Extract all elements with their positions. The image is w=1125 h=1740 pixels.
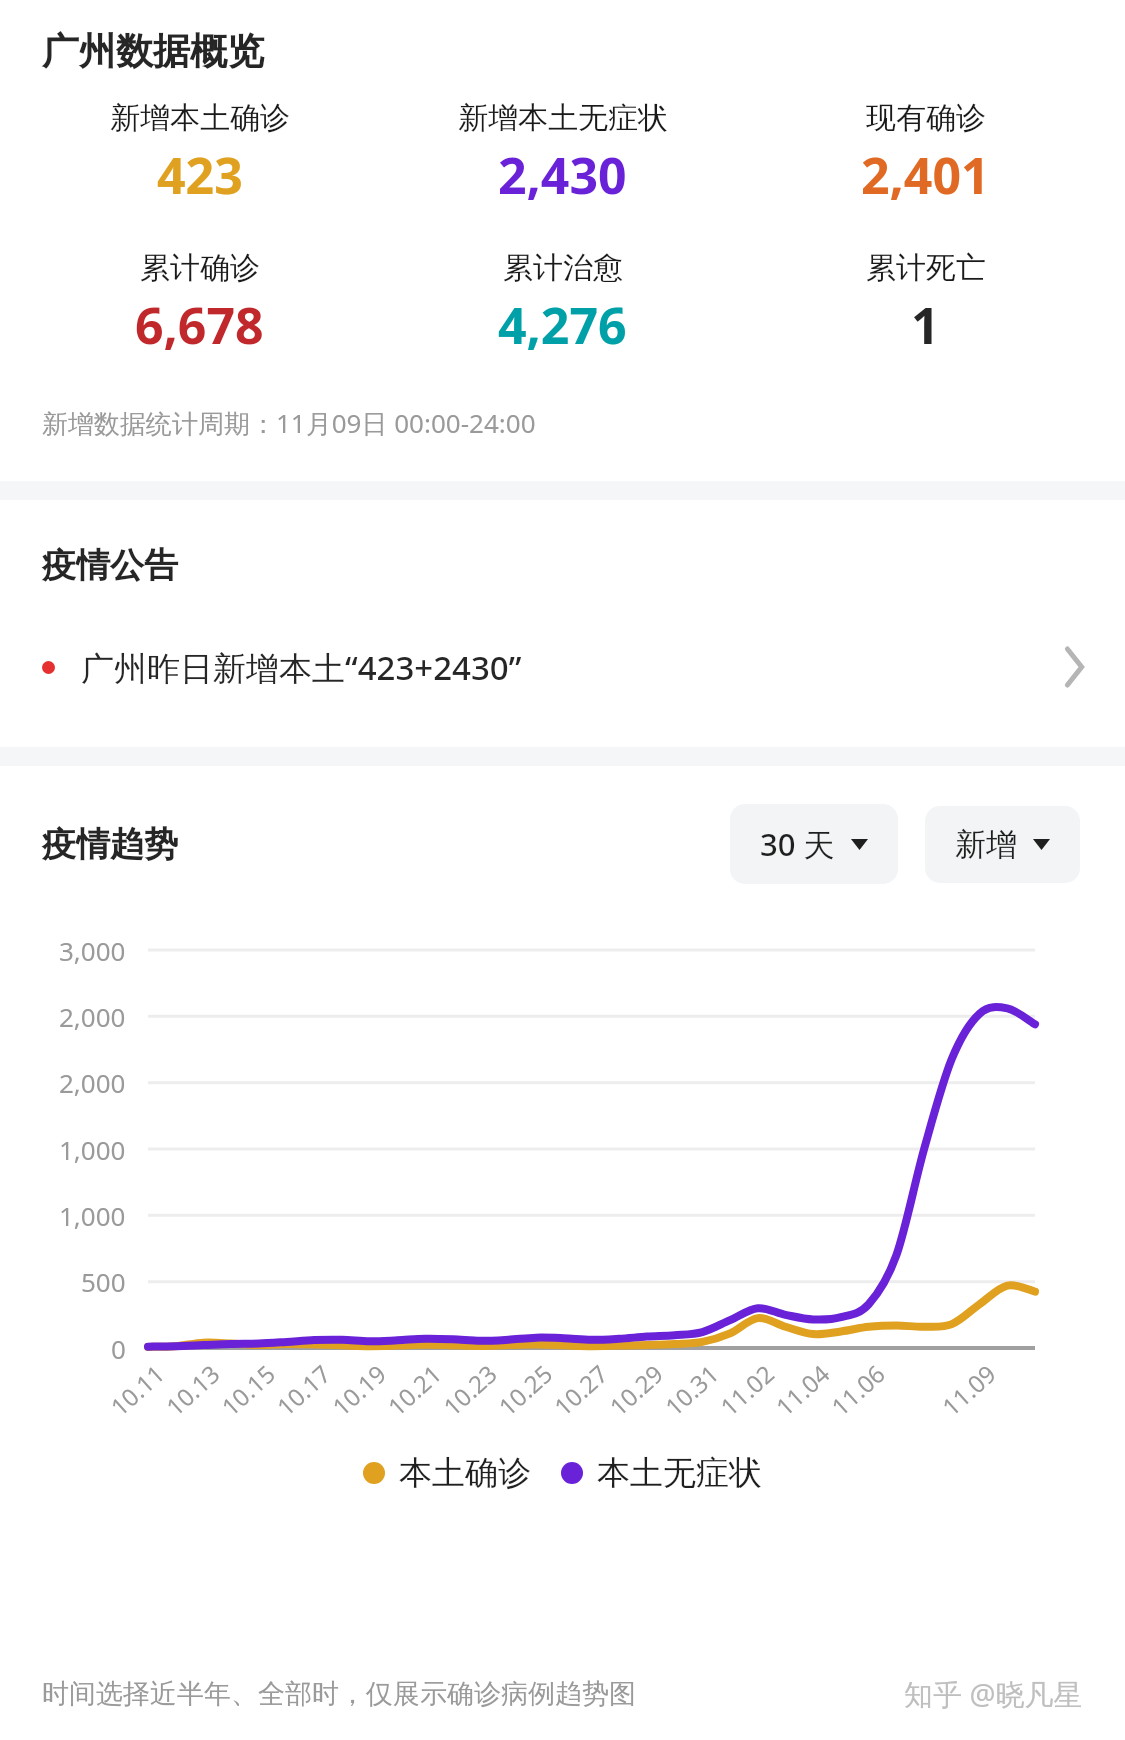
staticText: 本土无症状 <box>597 1452 762 1494</box>
staticText: 疫情公告 <box>42 544 178 587</box>
staticText: 2,401 <box>861 141 990 209</box>
staticText: 6,678 <box>135 291 264 359</box>
staticText: 4,276 <box>498 291 627 359</box>
staticText: 时间选择近半年、全部时，仅展示确诊病例趋势图 <box>42 1677 636 1711</box>
button[interactable]: 30 天 <box>730 804 898 884</box>
staticText: 累计治愈 <box>503 249 623 287</box>
staticText: 本土确诊 <box>399 1452 531 1494</box>
other: 查看详情 <box>1063 649 1085 685</box>
button[interactable]: 广州昨日新增本土“423+2430” <box>0 621 1125 713</box>
staticText: 广州数据概览 <box>42 28 264 75</box>
staticText: 累计确诊 <box>140 249 260 287</box>
staticText: 广州昨日新增本土“423+2430” <box>81 645 522 690</box>
staticText: 累计死亡 <box>866 249 986 287</box>
staticText: 30 天 <box>760 823 835 865</box>
staticText: 1 <box>911 291 940 359</box>
button[interactable]: 本土确诊 <box>363 1452 531 1494</box>
staticText: 知乎 @晓凡星 <box>904 1674 1083 1714</box>
staticText: 疫情趋势 <box>42 823 178 866</box>
staticText: 新增 <box>955 825 1017 864</box>
staticText: 新增数据统计周期：11月09日 00:00-24:00 <box>42 405 536 441</box>
staticText: 2,430 <box>498 141 627 209</box>
staticText: 新增本土确诊 <box>110 99 290 137</box>
staticText: 新增本土无症状 <box>458 99 668 137</box>
button[interactable]: 本土无症状 <box>561 1452 762 1494</box>
staticText: 423 <box>157 141 243 209</box>
staticText: 现有确诊 <box>866 99 986 137</box>
button[interactable]: 新增 <box>925 806 1080 883</box>
